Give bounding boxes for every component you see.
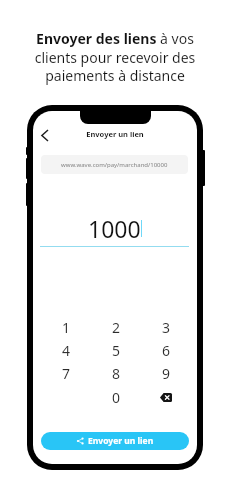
- staticText: 9: [162, 364, 171, 383]
- button[interactable]: 1: [49, 316, 83, 338]
- staticText: Envoyer un lien: [33, 129, 197, 139]
- button[interactable]: www.wave.com/pay/marchand/10000: [41, 155, 188, 174]
- staticText: 1: [62, 318, 71, 337]
- staticText: 6: [162, 341, 171, 360]
- staticText: 8: [112, 364, 121, 383]
- staticText: 0: [112, 388, 121, 407]
- button[interactable]: 0: [99, 386, 133, 408]
- staticText: 7: [62, 364, 71, 383]
- staticText: www.wave.com/pay/marchand/10000: [61, 161, 168, 169]
- button[interactable]: Delete: [149, 386, 183, 408]
- staticText: 5: [112, 341, 121, 360]
- button[interactable]: Back: [35, 126, 54, 145]
- staticText: 1000: [88, 213, 141, 244]
- button[interactable]: 5: [99, 339, 133, 361]
- button[interactable]: 7: [49, 362, 83, 384]
- button[interactable]: 6: [149, 339, 183, 361]
- button[interactable]: 8: [99, 362, 133, 384]
- staticText: 4: [62, 341, 71, 360]
- staticText: 3: [162, 318, 171, 337]
- button[interactable]: 2: [99, 316, 133, 338]
- staticText: Envoyer des liens à vos clients pour rec…: [29, 29, 201, 85]
- button[interactable]: 4: [49, 339, 83, 361]
- button[interactable]: Envoyer un lien: [41, 432, 189, 450]
- button[interactable]: 9: [149, 362, 183, 384]
- button[interactable]: 3: [149, 316, 183, 338]
- staticText: 2: [112, 318, 121, 337]
- staticText: Envoyer un lien: [88, 435, 154, 447]
